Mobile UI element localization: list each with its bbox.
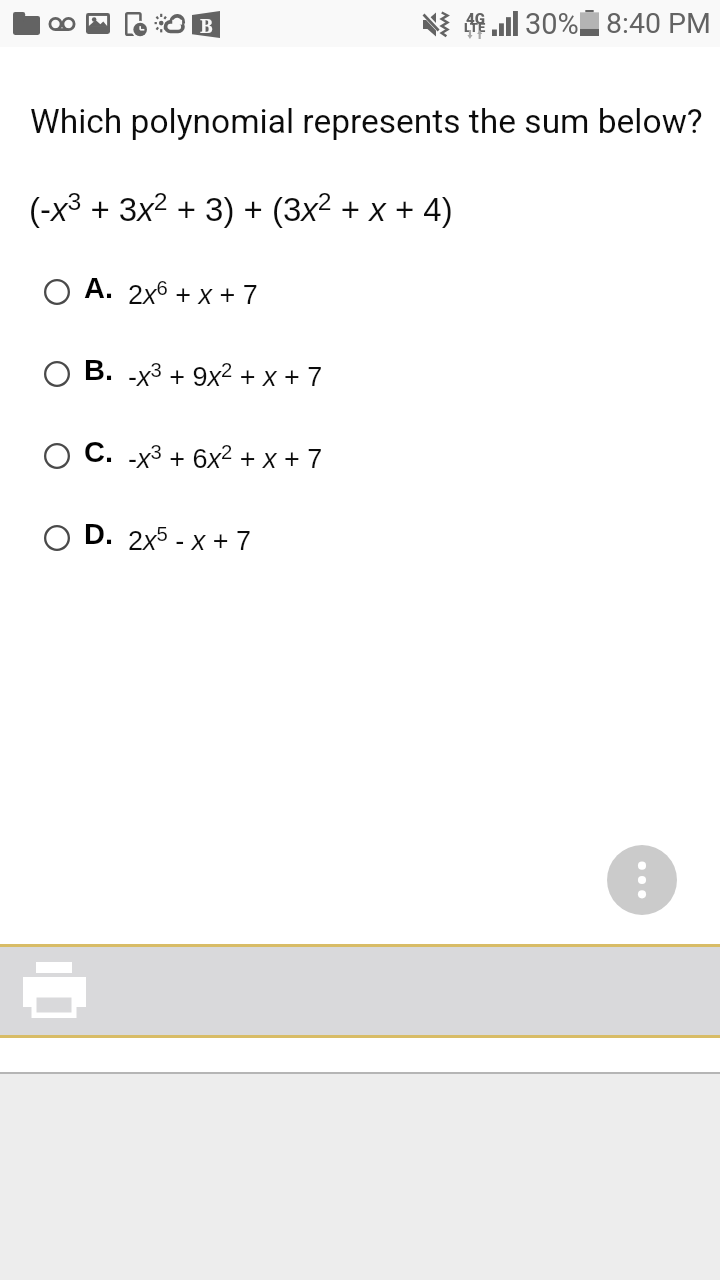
staticText: -x3 + 9x2 + x + 7 xyxy=(128,359,323,392)
staticText: D. xyxy=(84,518,113,550)
staticText: 8:40 PM xyxy=(606,7,711,40)
staticText: B xyxy=(200,13,213,39)
staticText: 2x6 + x + 7 xyxy=(128,277,258,310)
button[interactable]: D. xyxy=(24,504,696,572)
staticText: 4G xyxy=(466,10,485,28)
staticText: -x3 + 6x2 + x + 7 xyxy=(128,441,323,474)
button[interactable]: More options xyxy=(607,845,677,915)
staticText: C. xyxy=(84,436,113,468)
staticText: 30% xyxy=(525,7,579,41)
staticText: (-x3 + 3x2 + 3) + (3x2 + x + 4) xyxy=(29,188,453,228)
staticText: B. xyxy=(84,354,113,386)
staticText: LTE xyxy=(464,20,486,35)
staticText: 2x5 - x + 7 xyxy=(128,523,252,556)
staticText: A. xyxy=(84,272,113,304)
button[interactable]: A. xyxy=(24,258,696,326)
staticText: Which polynomial represents the sum belo… xyxy=(30,102,703,141)
button[interactable]: C. xyxy=(24,422,696,490)
button[interactable]: Print xyxy=(0,947,720,1035)
button[interactable]: B. xyxy=(24,340,696,408)
